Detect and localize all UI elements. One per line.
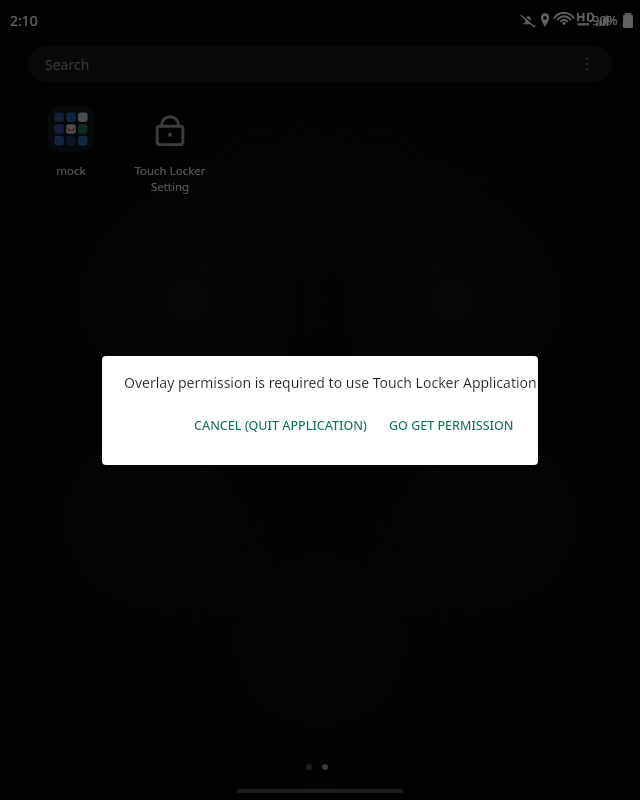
staticText: Search <box>45 55 90 74</box>
staticText: 90% <box>592 11 618 29</box>
staticText: CANCEL (QUIT APPLICATION) <box>194 417 367 434</box>
staticText: GO GET PERMISSION <box>389 417 514 434</box>
button[interactable]: Touch Locker Setting <box>122 106 218 194</box>
staticText: Overlay permission is required to use To… <box>124 373 537 392</box>
staticText: 2:10 <box>10 11 38 30</box>
button[interactable]: CANCEL (QUIT APPLICATION) <box>184 408 377 443</box>
staticText: mock <box>56 163 86 179</box>
button[interactable]: GO GET PERMISSION <box>379 408 524 443</box>
button[interactable]: mock <box>26 106 116 179</box>
button[interactable]: Search <box>28 46 612 82</box>
staticText: Touch Locker Setting <box>134 163 206 194</box>
